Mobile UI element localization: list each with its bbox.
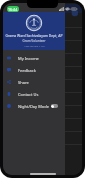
button[interactable]: Night Day Mode toggle	[51, 104, 58, 108]
button[interactable]: Contact Us	[3, 88, 65, 100]
button[interactable]: Feedback	[3, 64, 65, 76]
staticText: My Income	[18, 56, 39, 61]
staticText: Share	[18, 80, 29, 85]
staticText: Feedback	[18, 68, 36, 73]
staticText: Gram Volunteer	[22, 39, 46, 43]
staticText: App Version 1.0.5	[24, 44, 45, 47]
button[interactable]: Share	[3, 76, 65, 88]
button[interactable]: My Income	[3, 52, 65, 64]
staticText: 16:44	[8, 7, 18, 12]
staticText: Contact Us	[18, 92, 39, 97]
staticText: Night/Day Mode	[18, 104, 49, 109]
button[interactable]: Night/Day Mode	[3, 100, 65, 112]
staticText: Grama Ward Sachivalayam Dept, AP	[5, 33, 63, 38]
